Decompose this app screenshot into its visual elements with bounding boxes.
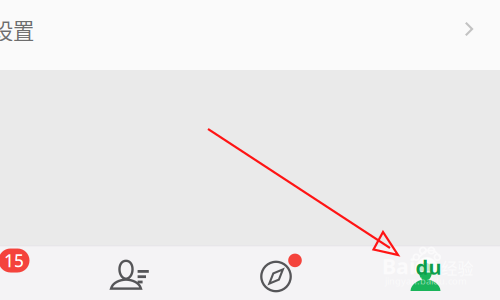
button[interactable]: 设置 xyxy=(0,0,500,70)
staticText: 15 xyxy=(4,249,24,272)
button[interactable]: Contacts xyxy=(57,245,203,299)
button[interactable]: Me xyxy=(349,245,495,299)
staticText: Bai xyxy=(382,252,415,280)
staticText: du xyxy=(415,254,441,280)
staticText: jingyan.baidu.com xyxy=(385,275,467,287)
staticText: 设置 xyxy=(0,14,34,45)
button[interactable]: Discover xyxy=(203,245,349,299)
button[interactable]: Chats xyxy=(0,245,57,299)
